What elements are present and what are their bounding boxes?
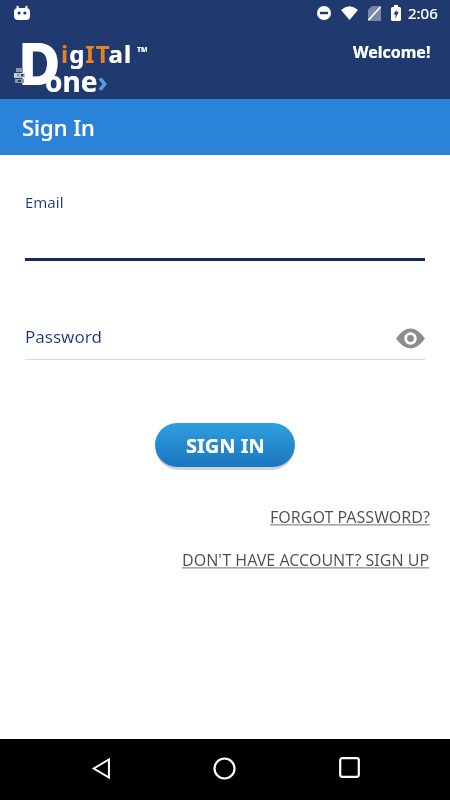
staticText: Password (25, 325, 102, 348)
staticText: Welcome! (353, 41, 431, 63)
staticText: SIGN IN (186, 432, 265, 459)
button[interactable]: FORGOT PASSWORD? (270, 506, 430, 528)
staticText: TM (137, 45, 148, 55)
button[interactable] (213, 757, 236, 780)
staticText: Email (25, 192, 64, 212)
button[interactable] (91, 758, 114, 779)
button[interactable]: SIGN IN (155, 423, 295, 467)
button[interactable]: DON'T HAVE ACCOUNT? SIGN UP (182, 549, 430, 571)
button[interactable] (396, 329, 425, 348)
staticText: D (18, 23, 61, 97)
button[interactable] (339, 757, 360, 778)
staticText: igITal (61, 37, 133, 70)
staticText: one› (45, 62, 108, 100)
staticText: Sign In (22, 112, 95, 142)
staticText: 2:06 (408, 3, 438, 23)
